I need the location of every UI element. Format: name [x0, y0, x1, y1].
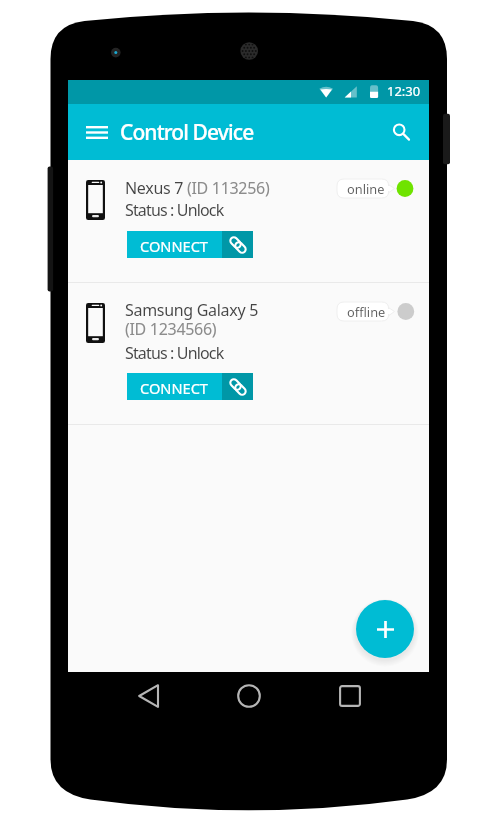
staticText: Nexus 7 (ID 113256)	[125, 177, 270, 199]
button[interactable]: Open navigation menu	[75, 110, 119, 154]
staticText: CONNECT	[140, 236, 208, 256]
staticText: (ID 1234566)	[125, 318, 217, 340]
button[interactable]: Add device	[356, 600, 414, 658]
button[interactable]: Search	[379, 110, 423, 154]
staticText: Status : Unlock	[125, 342, 224, 364]
button[interactable]: CONNECT	[127, 231, 253, 258]
staticText: online	[347, 180, 385, 197]
staticText: CONNECT	[140, 378, 208, 398]
button[interactable]: Recent apps	[339, 685, 361, 707]
button[interactable]: Nexus 7 (ID 113256)	[68, 160, 429, 282]
staticText: 12:30	[387, 82, 421, 100]
staticText: Control Device	[120, 118, 254, 147]
button[interactable]: Home	[237, 684, 261, 708]
staticText: Status : Unlock	[125, 199, 224, 221]
staticText: Samsung Galaxy 5	[125, 299, 259, 321]
button[interactable]: Back	[138, 684, 159, 708]
button[interactable]: CONNECT	[127, 373, 253, 400]
staticText: offline	[347, 303, 386, 320]
button[interactable]: Samsung Galaxy 5	[68, 283, 429, 424]
